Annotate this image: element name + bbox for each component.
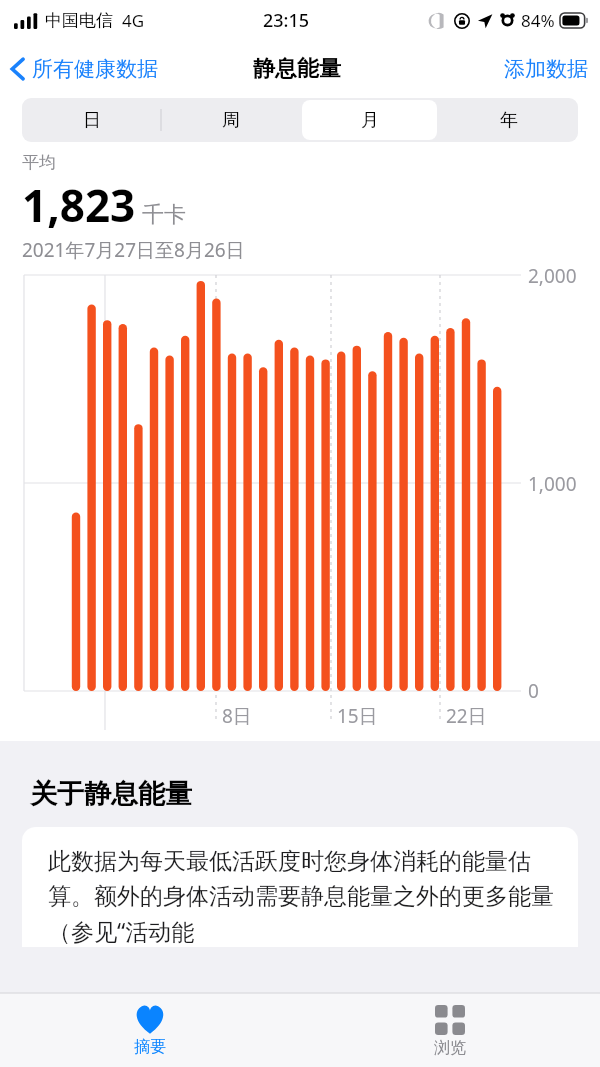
button[interactable]: 添加数据 — [492, 48, 600, 90]
staticText: 1,823 — [22, 175, 136, 235]
button[interactable]: 浏览 — [300, 993, 600, 1067]
staticText: 浏览 — [434, 1038, 466, 1058]
staticText: 0 — [528, 678, 539, 704]
staticText: 所有健康数据 — [32, 56, 158, 82]
button[interactable]: 摘要 — [0, 993, 300, 1067]
button[interactable]: 此数据为每天最低活跃度时您身体消耗的能量估算。额外的身体活动需要静息能量之外的更… — [22, 827, 578, 947]
staticText: 千卡 — [142, 201, 186, 229]
button[interactable]: 月 — [300, 98, 439, 142]
staticText: 1,000 — [528, 471, 577, 497]
staticText: 年 — [500, 109, 518, 132]
staticText: 关于静息能量 — [30, 777, 192, 811]
staticText: 8日 — [222, 703, 252, 729]
button[interactable]: 周 — [161, 98, 300, 142]
staticText: 2,000 — [528, 263, 577, 289]
staticText: 22日 — [446, 703, 487, 729]
staticText: 月 — [361, 109, 379, 132]
staticText: 中国电信 — [45, 10, 113, 31]
staticText: 周 — [222, 109, 240, 132]
staticText: 平均 — [22, 152, 56, 173]
staticText: 此数据为每天最低活跃度时您身体消耗的能量估算。额外的身体活动需要静息能量之外的更… — [48, 847, 560, 947]
button[interactable]: 日 — [22, 98, 161, 142]
staticText: 静息能量 — [253, 55, 341, 83]
button[interactable]: 年 — [439, 98, 578, 142]
staticText: 4G — [122, 9, 145, 32]
staticText: 23:15 — [263, 8, 310, 33]
staticText: 2021年7月27日至8月26日 — [22, 237, 245, 263]
staticText: 15日 — [337, 703, 378, 729]
staticText: 摘要 — [134, 1037, 166, 1057]
staticText: 84% — [521, 9, 555, 32]
button[interactable]: 所有健康数据 — [0, 50, 166, 88]
staticText: 日 — [83, 109, 101, 132]
